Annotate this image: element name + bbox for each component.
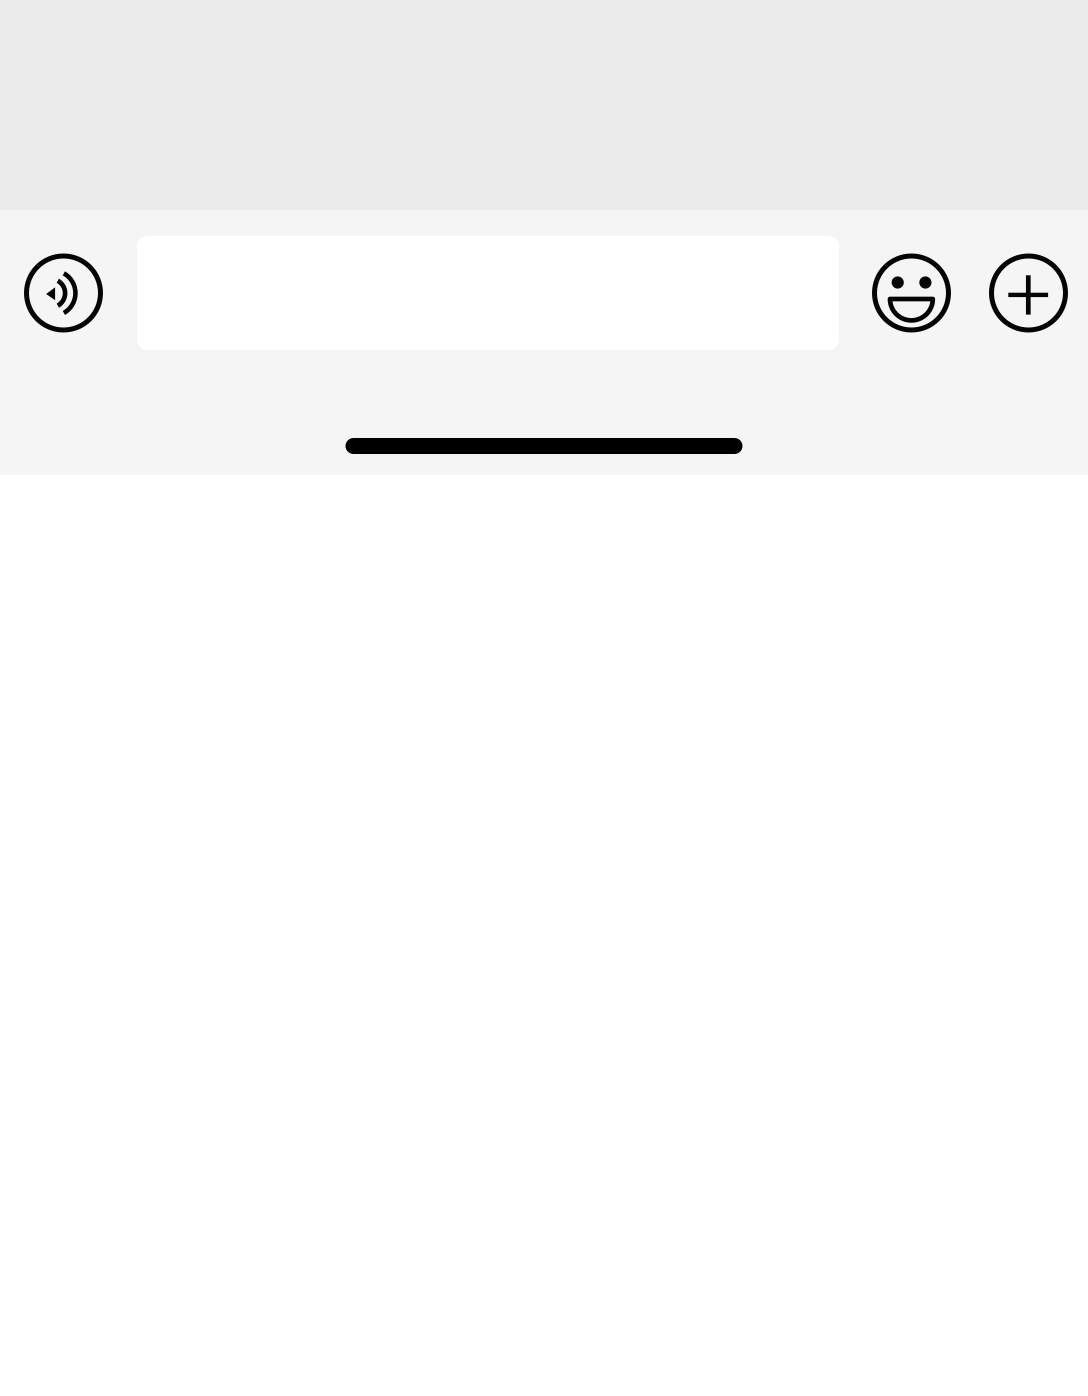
button[interactable]: Audio message (24, 253, 103, 332)
button[interactable]: Stickers (872, 253, 951, 332)
button[interactable]: Add (989, 253, 1068, 332)
